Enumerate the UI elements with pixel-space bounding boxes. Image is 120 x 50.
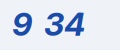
button[interactable]: 9 34 — [0, 0, 120, 50]
staticText: 9 34 — [12, 5, 85, 43]
